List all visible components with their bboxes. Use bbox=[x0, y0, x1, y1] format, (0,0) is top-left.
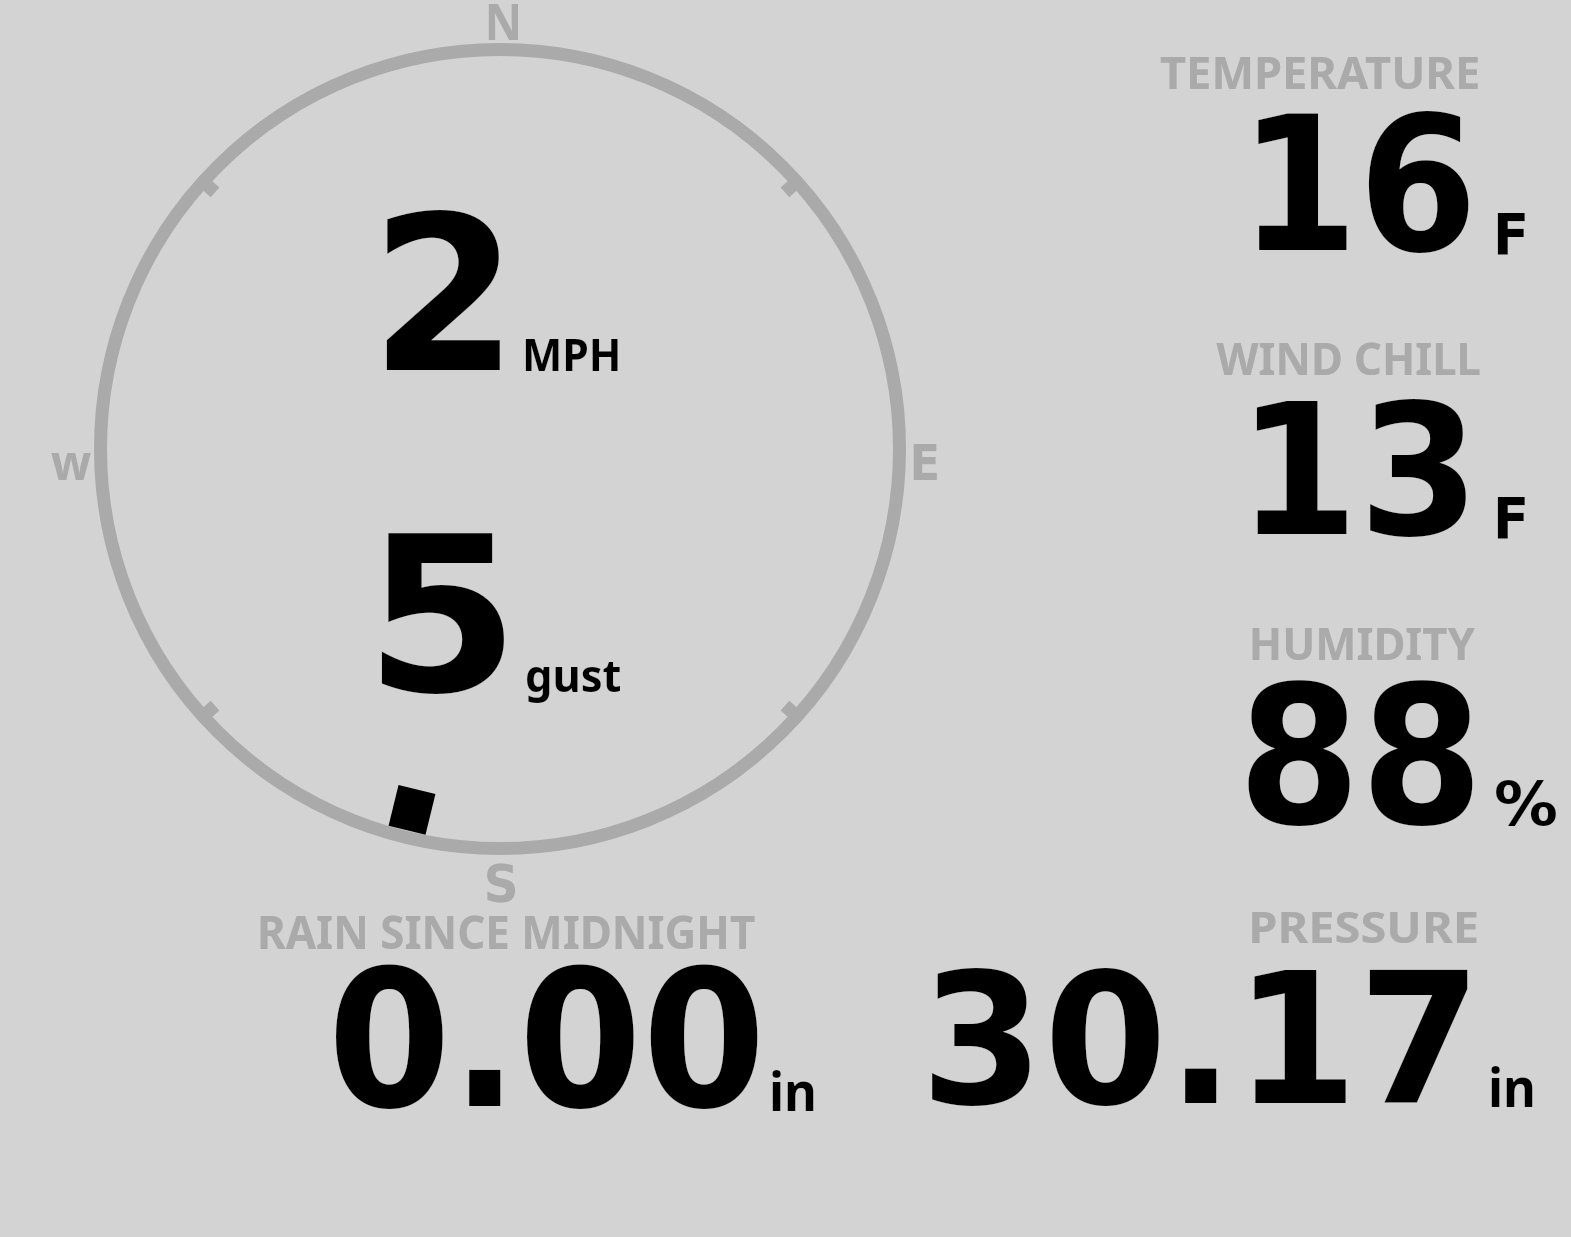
staticText: 30.17 bbox=[920, 934, 1482, 1145]
staticText: MPH bbox=[522, 324, 622, 384]
staticText: w bbox=[51, 428, 92, 495]
staticText: 13 bbox=[1237, 365, 1480, 576]
button[interactable]: Wind chill 13 degrees Fahrenheit bbox=[1140, 325, 1571, 585]
button[interactable]: Wind direction dial, 2 miles per hour, g… bbox=[94, 44, 906, 856]
staticText: in bbox=[1488, 1050, 1536, 1122]
staticText: HUMIDITY bbox=[1249, 612, 1475, 674]
staticText: in bbox=[769, 1054, 817, 1126]
staticText: F bbox=[1493, 203, 1530, 268]
staticText: N bbox=[485, 0, 522, 55]
staticText: TEMPERATURE bbox=[1160, 41, 1481, 103]
staticText: % bbox=[1494, 769, 1558, 839]
staticText: 0.00 bbox=[327, 929, 766, 1151]
staticText: E bbox=[910, 434, 940, 491]
staticText: 16 bbox=[1239, 75, 1478, 294]
staticText: RAIN SINCE MIDNIGHT bbox=[257, 900, 756, 963]
staticText: F bbox=[1493, 487, 1530, 552]
staticText: 5 bbox=[365, 490, 520, 742]
staticText: S bbox=[484, 855, 519, 914]
button[interactable]: Temperature 16 degrees Fahrenheit bbox=[1140, 40, 1571, 310]
staticText: WIND CHILL bbox=[1216, 327, 1481, 388]
staticText: PRESSURE bbox=[1248, 897, 1480, 956]
button[interactable]: Rain since midnight 0.00 inches bbox=[240, 900, 830, 1130]
button[interactable]: Humidity 88 percent bbox=[1140, 605, 1571, 870]
staticText: 88 bbox=[1238, 643, 1484, 868]
staticText: gust bbox=[525, 643, 622, 705]
button[interactable]: Pressure 30.17 inches bbox=[900, 900, 1540, 1130]
staticText: 2 bbox=[370, 169, 519, 421]
